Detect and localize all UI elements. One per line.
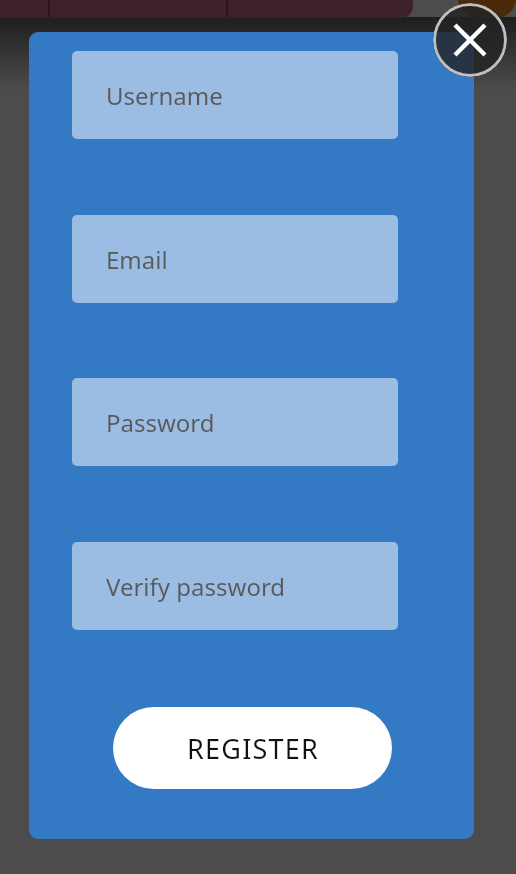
staticText: Verify password — [106, 570, 286, 603]
button[interactable]: Username — [72, 51, 398, 139]
staticText: Username — [106, 79, 223, 112]
button[interactable]: Close — [433, 3, 507, 77]
button[interactable]: Password — [72, 378, 398, 466]
button[interactable]: Verify password — [72, 542, 398, 630]
staticText: Password — [106, 406, 215, 439]
button[interactable]: Email — [72, 215, 398, 303]
staticText: REGISTER — [187, 730, 319, 767]
staticText: Email — [106, 243, 168, 276]
button[interactable]: REGISTER — [113, 707, 392, 789]
